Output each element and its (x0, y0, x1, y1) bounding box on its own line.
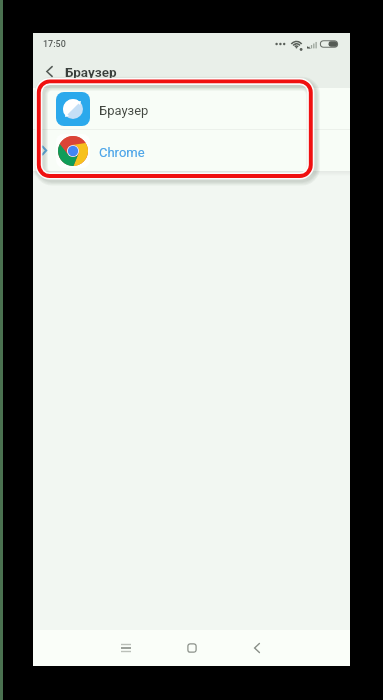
button[interactable]: Back (33, 55, 65, 88)
button[interactable]: Chrome (33, 130, 350, 171)
button[interactable]: Back (240, 631, 274, 665)
staticText: Браузер (65, 64, 117, 80)
staticText: Браузер (99, 103, 149, 118)
button[interactable]: Recents (109, 631, 143, 665)
button[interactable]: Браузер (33, 88, 350, 129)
button[interactable]: Home (175, 631, 209, 665)
staticText: 17:50 (43, 39, 66, 50)
staticText: Chrome (99, 145, 145, 160)
